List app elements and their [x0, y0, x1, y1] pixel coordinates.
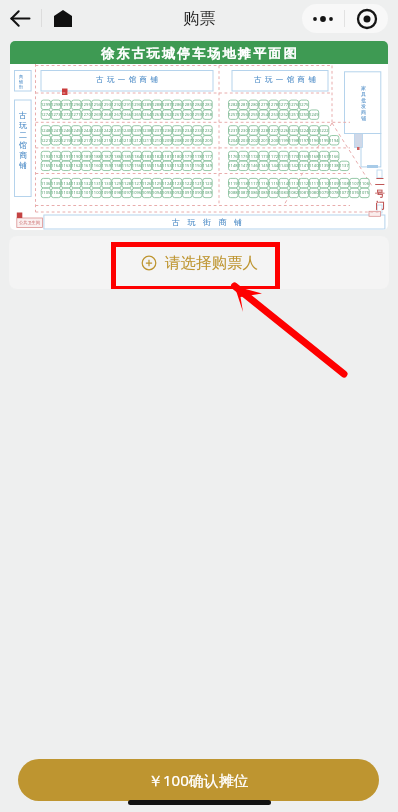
staticText: 具	[361, 91, 366, 97]
button[interactable]: Home	[49, 4, 77, 32]
staticText: 购票	[183, 8, 216, 29]
staticText: 二	[19, 130, 27, 140]
button[interactable]: More	[302, 4, 344, 33]
staticText: 徐东古玩城停车场地摊平面图	[101, 45, 299, 61]
staticText: 玩	[19, 120, 27, 130]
staticText: 二	[375, 176, 385, 188]
staticText: 铺	[19, 79, 23, 84]
staticText: 商	[19, 150, 27, 160]
staticText: 古	[19, 110, 27, 120]
staticText: 号	[375, 188, 385, 200]
staticText: 古玩一馆商铺	[254, 75, 320, 84]
staticText: ￥100确认摊位	[148, 770, 249, 790]
staticText: 铺	[361, 115, 366, 121]
staticText: 古玩一馆商铺	[96, 75, 162, 84]
staticText: 铺	[19, 160, 27, 170]
button[interactable]: Close	[345, 4, 388, 33]
staticText: 家	[361, 85, 366, 91]
button[interactable]: Back	[6, 4, 34, 32]
staticText: 门	[375, 200, 385, 212]
button[interactable]: 请选择购票人	[115, 243, 284, 283]
staticText: 古玩街商铺	[172, 217, 250, 227]
button[interactable]: ￥100确认摊位	[18, 759, 379, 801]
staticText: 请选择购票人	[165, 253, 258, 273]
staticText: 馆	[19, 140, 27, 150]
staticText: 商	[361, 109, 366, 115]
staticText: 发	[361, 103, 366, 109]
staticText: 公共卫生间	[19, 220, 40, 225]
staticText: 批	[361, 97, 366, 103]
staticText: 商	[19, 74, 23, 79]
staticText: 街	[19, 84, 23, 89]
